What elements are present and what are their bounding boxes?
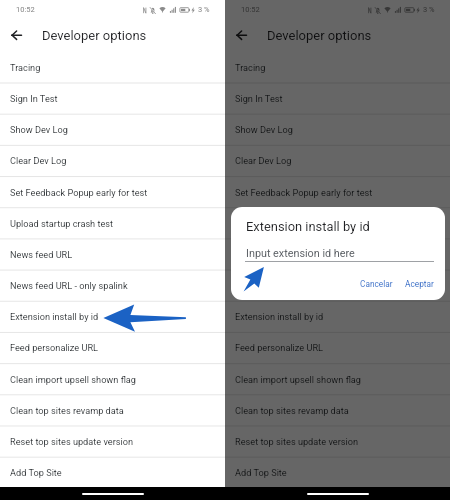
staticText: Extension install by id <box>235 311 324 322</box>
button[interactable]: Tracing <box>225 52 450 83</box>
staticText: Tracing <box>235 62 266 73</box>
button[interactable]: Set Feedback Popup early for test <box>0 177 225 208</box>
staticText: Clean top sites revamp data <box>235 405 349 416</box>
staticText: Sign In Test <box>10 93 58 104</box>
button[interactable]: Upload startup crash test <box>0 208 225 239</box>
button[interactable]: Reset top sites update version <box>0 426 225 457</box>
staticText: Set Feedback Popup early for test <box>235 187 373 198</box>
button[interactable]: Extension install by id <box>225 301 450 332</box>
button[interactable]: Set Feedback Popup early for test <box>225 177 450 208</box>
button[interactable]: Upload startup crash test <box>225 208 450 239</box>
staticText: Clean import upsell shown flag <box>235 374 362 385</box>
staticText: Input extension id here <box>246 247 355 260</box>
staticText: Extension install by id <box>10 311 99 322</box>
button[interactable]: News feed URL <box>225 239 450 270</box>
staticText: News feed URL - only spalink <box>10 280 128 291</box>
staticText: Show Dev Log <box>235 124 293 135</box>
button[interactable]: Reset top sites update version <box>225 426 450 457</box>
staticText: Upload startup crash test <box>235 218 339 229</box>
button[interactable]: Sign In Test <box>0 83 225 114</box>
staticText: Extension install by id <box>246 219 370 234</box>
button[interactable]: Cancelar <box>360 279 393 289</box>
button[interactable]: Clean import upsell shown flag <box>225 364 450 395</box>
staticText: Clear Dev Log <box>235 155 292 166</box>
staticText: Reset top sites update version <box>10 436 134 447</box>
staticText: Add Top Site <box>10 467 62 478</box>
staticText: Developer options <box>267 28 372 43</box>
staticText: News feed URL - only spalink <box>235 280 353 291</box>
button[interactable]: Clear Dev Log <box>225 145 450 176</box>
staticText: 10:52 <box>241 5 260 14</box>
button[interactable]: Clean top sites revamp data <box>0 395 225 426</box>
staticText: Reset top sites update version <box>235 436 359 447</box>
staticText: Sign In Test <box>235 93 283 104</box>
staticText: Show Dev Log <box>10 124 68 135</box>
staticText: Developer options <box>42 28 147 43</box>
staticText: 3 % <box>198 5 210 14</box>
button[interactable]: Add Top Site <box>0 457 225 488</box>
button[interactable]: Clean top sites revamp data <box>225 395 450 426</box>
button[interactable]: Show Dev Log <box>225 114 450 145</box>
button[interactable]: Feed personalize URL <box>225 332 450 363</box>
button[interactable]: Show Dev Log <box>0 114 225 145</box>
staticText: News feed URL <box>235 249 298 260</box>
staticText: Tracing <box>10 62 41 73</box>
button[interactable]: Extension install by id <box>0 301 225 332</box>
staticText: Set Feedback Popup early for test <box>10 187 148 198</box>
staticText: Upload startup crash test <box>10 218 114 229</box>
staticText: Clean top sites revamp data <box>10 405 124 416</box>
staticText: 10:52 <box>16 5 35 14</box>
button[interactable]: Sign In Test <box>225 83 450 114</box>
staticText: 3 % <box>423 5 435 14</box>
button[interactable]: Clear Dev Log <box>0 145 225 176</box>
button[interactable]: Back <box>227 22 253 48</box>
staticText: Feed personalize URL <box>10 342 99 353</box>
button[interactable]: Add Top Site <box>225 457 450 488</box>
button[interactable]: Feed personalize URL <box>0 332 225 363</box>
button[interactable]: Tracing <box>0 52 225 83</box>
button[interactable]: Clean import upsell shown flag <box>0 364 225 395</box>
button[interactable]: News feed URL <box>0 239 225 270</box>
button[interactable]: News feed URL - only spalink <box>225 270 450 301</box>
staticText: Clean import upsell shown flag <box>10 374 137 385</box>
staticText: News feed URL <box>10 249 73 260</box>
button[interactable]: Back <box>2 22 28 48</box>
button[interactable]: Aceptar <box>405 279 434 289</box>
staticText: Add Top Site <box>235 467 287 478</box>
staticText: Clear Dev Log <box>10 155 67 166</box>
button[interactable]: News feed URL - only spalink <box>0 270 225 301</box>
staticText: Feed personalize URL <box>235 342 324 353</box>
